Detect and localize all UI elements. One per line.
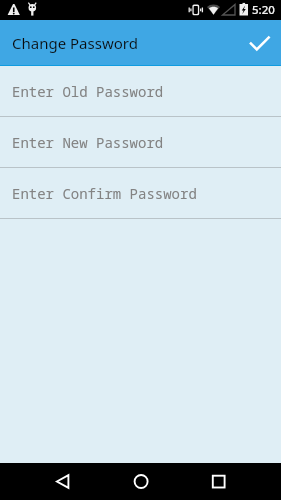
button[interactable]: Recents	[187, 463, 281, 500]
staticText: 5:20	[252, 2, 275, 18]
button[interactable]: Home	[94, 463, 188, 500]
button[interactable]: Confirm	[235, 20, 281, 66]
button[interactable]: Enter New Password	[0, 117, 281, 168]
button[interactable]: Back	[0, 463, 93, 500]
button[interactable]: Enter Confirm Password	[0, 168, 281, 219]
button[interactable]: Enter Old Password	[0, 66, 281, 117]
staticText: Change Password	[12, 33, 138, 53]
staticText: Enter New Password	[12, 133, 164, 152]
staticText: Enter Confirm Password	[12, 184, 197, 203]
staticText: Enter Old Password	[12, 82, 164, 101]
